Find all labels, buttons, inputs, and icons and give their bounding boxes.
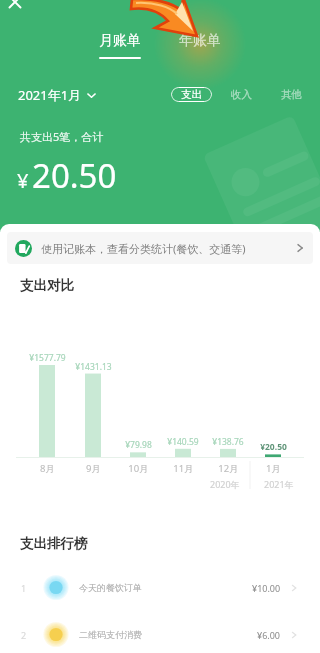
button[interactable]: 1 [0,564,320,611]
staticText: ¥79.98 [125,439,152,451]
staticText: 使用记账本，查看分类统计(餐饮、交通等) [41,241,246,256]
staticText: 支出对比 [20,277,74,294]
staticText: 1 [21,582,27,594]
button[interactable]: 其他 [276,85,306,104]
button[interactable]: 2021年1月 [18,86,96,104]
staticText: 2021年 [264,478,294,490]
staticText: 8月 [40,462,55,475]
button[interactable]: 收入 [226,85,256,104]
staticText: 1月 [266,462,281,475]
staticText: 今天的餐饮订单 [79,582,142,593]
staticText: 12月 [218,462,239,475]
staticText: ¥138.76 [212,436,244,448]
staticText: 2 [21,629,27,641]
button[interactable]: 使用记账本，查看分类统计(餐饮、交通等) [7,232,313,264]
staticText: 9月 [86,462,101,475]
staticText: ¥ [17,167,29,194]
staticText: 20.50 [32,153,117,198]
staticText: 收入 [231,88,252,101]
staticText: 月账单 [99,32,141,50]
staticText: 共支出5笔，合计 [20,129,104,144]
staticText: ¥10.00 [252,582,281,594]
staticText: 其他 [281,88,302,101]
staticText: 支出排行榜 [20,535,88,552]
staticText: 年账单 [179,32,221,50]
button[interactable]: Close [3,0,27,14]
staticText: 二维码支付消费 [79,629,142,640]
button[interactable]: 支出 [171,87,212,102]
staticText: 10月 [128,462,149,475]
staticText: ¥140.59 [167,436,199,448]
staticText: 11月 [173,462,194,475]
button[interactable]: 年账单 [179,32,221,50]
staticText: ¥6.00 [257,629,281,641]
staticText: ¥20.50 [260,441,287,453]
button[interactable]: 月账单 [99,32,141,59]
staticText: 2021年1月 [18,86,82,104]
staticText: ¥1577.79 [29,352,66,364]
staticText: 支出 [181,88,202,101]
staticText: 2020年 [210,478,240,490]
button[interactable]: 2 [0,611,320,653]
staticText: ¥1431.13 [75,361,112,373]
